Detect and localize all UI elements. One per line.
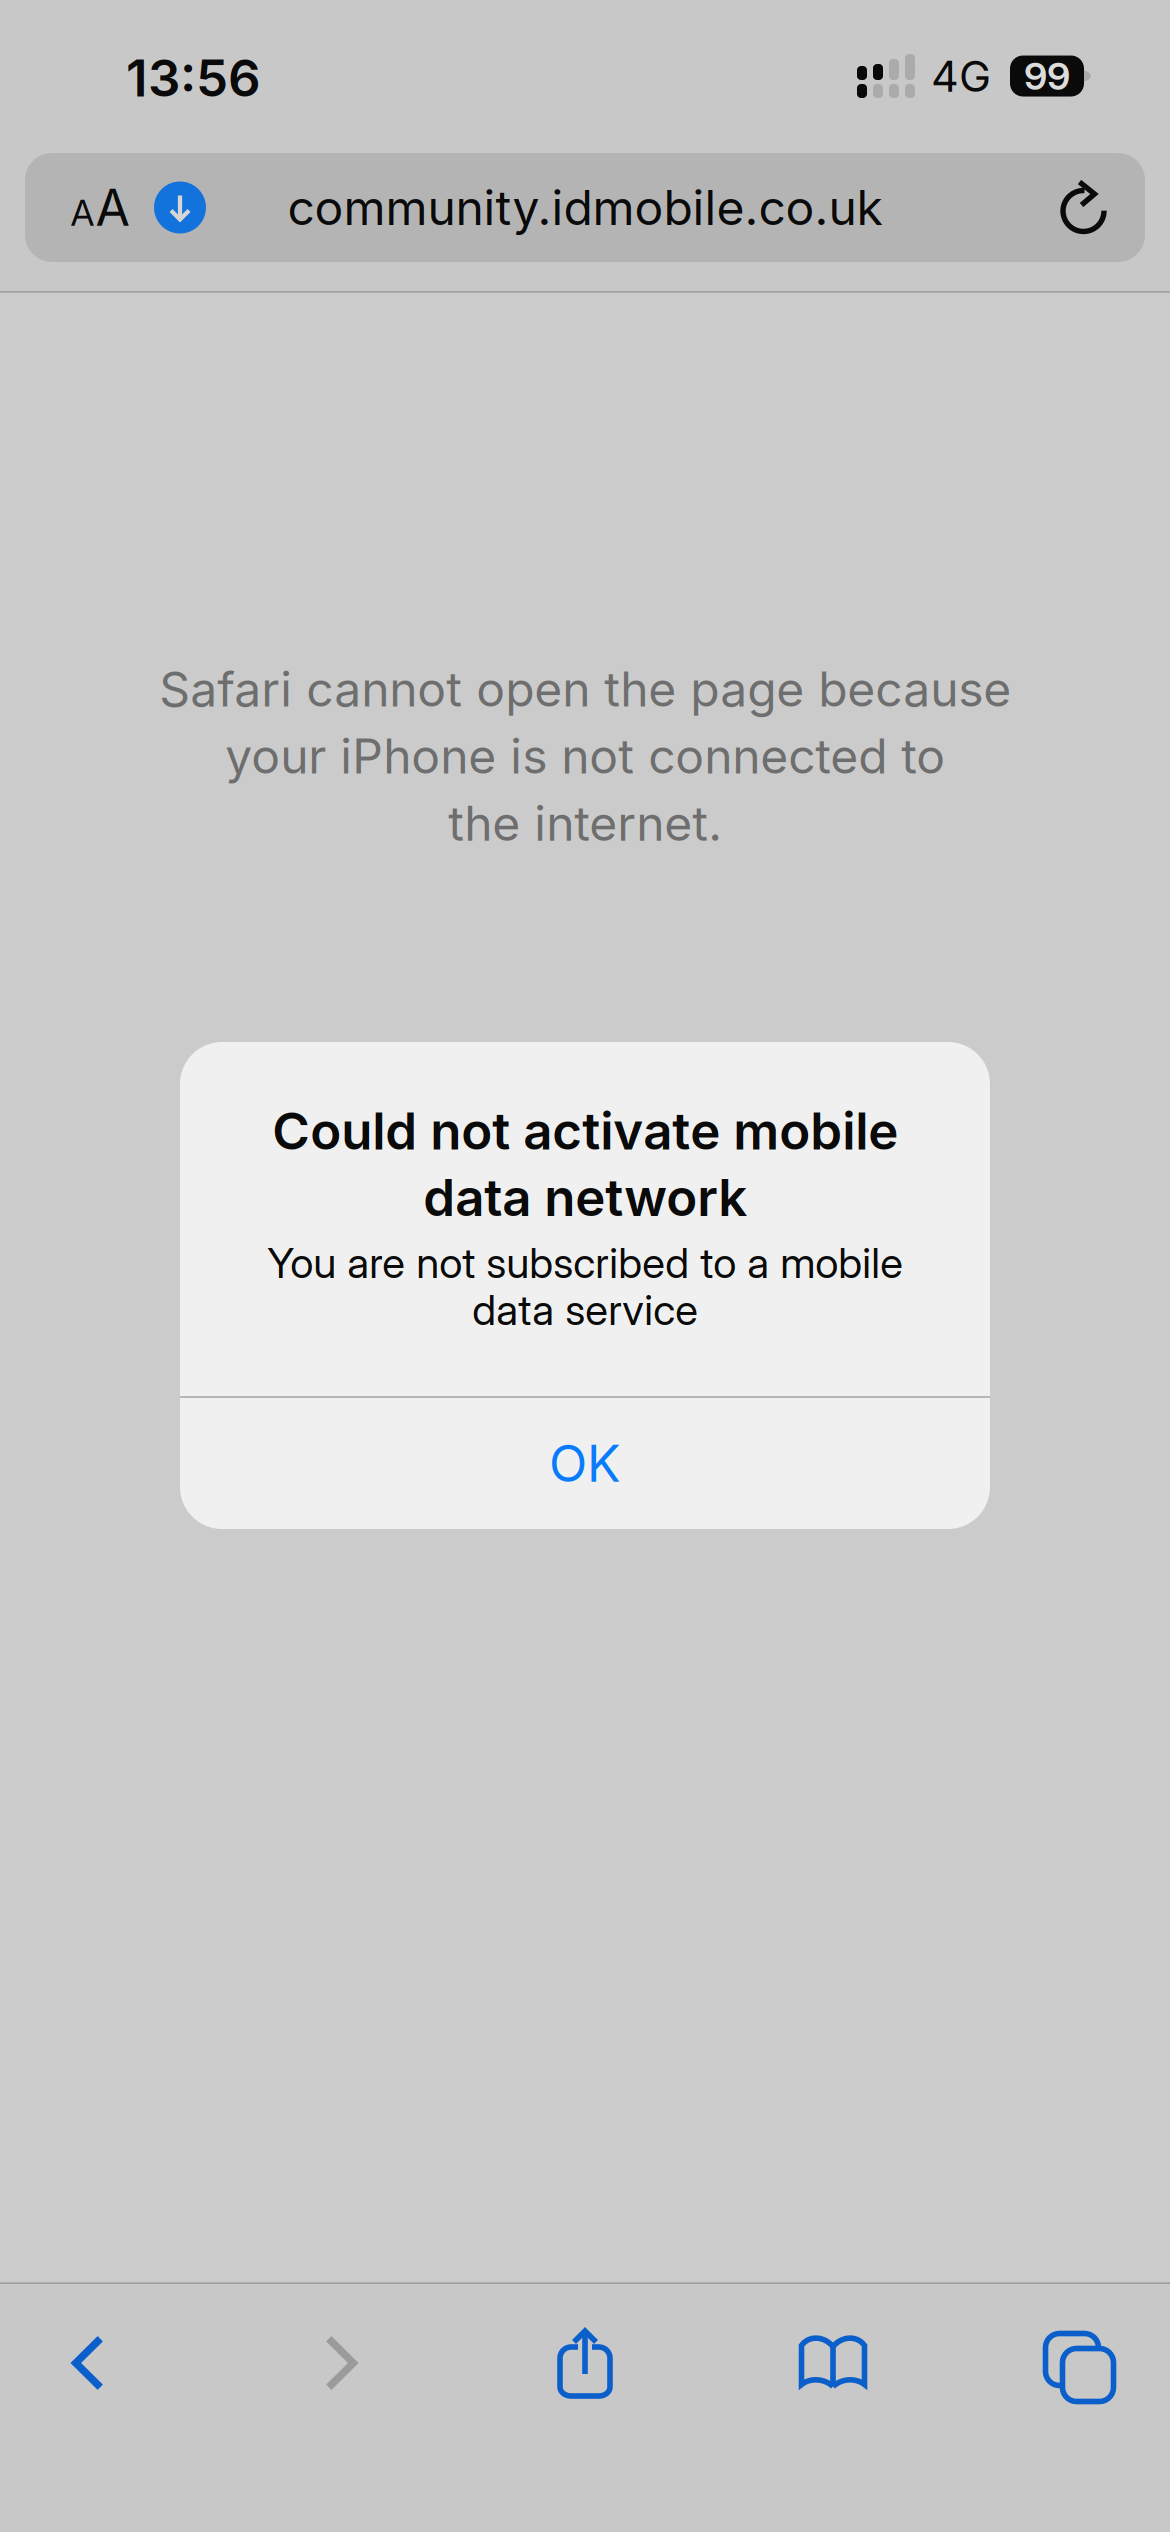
button[interactable]: Reload [1032, 153, 1128, 262]
staticText: Safari cannot open the page because your… [159, 660, 1011, 852]
button[interactable]: Page settings [50, 153, 150, 262]
staticText: A [70, 191, 94, 234]
staticText: 13:56 [126, 47, 261, 109]
button[interactable]: Tabs [997, 2285, 1147, 2435]
staticText: community.idmobile.co.uk [287, 178, 882, 237]
staticText: OK [549, 1433, 621, 1494]
button[interactable]: Downloads [140, 153, 220, 262]
button[interactable]: Back [13, 2288, 163, 2438]
button[interactable]: Share [510, 2288, 660, 2438]
staticText: 99 [1024, 53, 1070, 99]
button[interactable]: Bookmarks [758, 2287, 908, 2437]
staticText: Could not activate mobile data network [272, 1100, 898, 1228]
button[interactable]: Forward [266, 2288, 416, 2438]
staticText: You are not subscribed to a mobile data … [267, 1237, 903, 1335]
staticText: A [95, 177, 129, 238]
button[interactable]: OK [180, 1398, 990, 1529]
staticText: 4G [931, 50, 991, 102]
